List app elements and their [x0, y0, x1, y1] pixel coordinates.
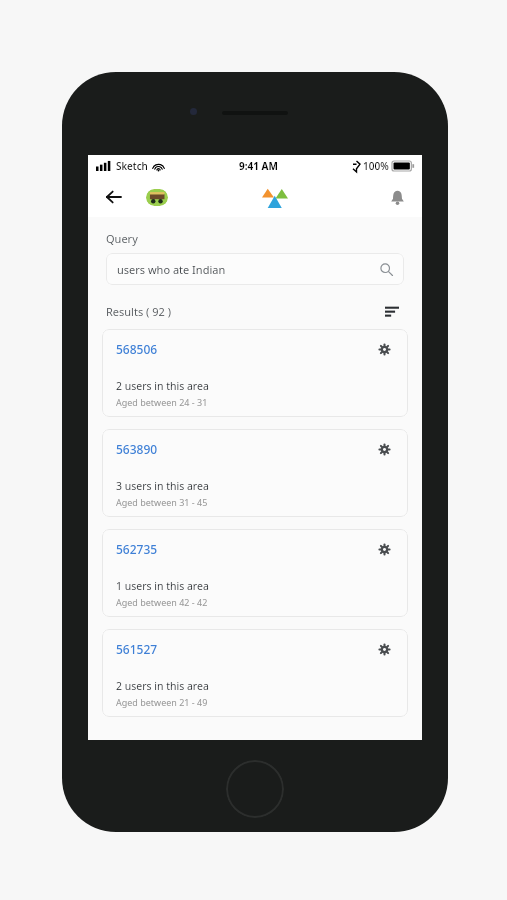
- staticText: 9:41 AM: [239, 159, 278, 173]
- button[interactable]: Back: [98, 182, 128, 212]
- staticText: Aged between 42 - 42: [116, 596, 208, 608]
- staticText: Aged between 31 - 45: [116, 496, 208, 508]
- staticText: Results ( 92 ): [106, 304, 171, 319]
- staticText: 2 users in this area: [116, 679, 209, 693]
- staticText: 1 users in this area: [116, 579, 209, 593]
- button[interactable]: Settings: [374, 339, 394, 359]
- staticText: 568506: [116, 341, 158, 357]
- button[interactable]: Sort: [380, 301, 404, 321]
- button[interactable]: Settings: [374, 639, 394, 659]
- button[interactable]: users who ate Indian: [106, 253, 404, 285]
- button[interactable]: Home: [260, 185, 290, 209]
- staticText: 563890: [116, 441, 158, 457]
- staticText: 562735: [116, 541, 158, 557]
- button[interactable]: Settings: [374, 539, 394, 559]
- button[interactable]: 561527: [102, 629, 408, 717]
- button[interactable]: 563890: [102, 429, 408, 517]
- staticText: Query: [106, 231, 138, 246]
- staticText: 561527: [116, 641, 158, 657]
- staticText: Aged between 24 - 31: [116, 396, 208, 408]
- button[interactable]: 562735: [102, 529, 408, 617]
- staticText: 3 users in this area: [116, 479, 209, 493]
- staticText: users who ate Indian: [117, 262, 226, 277]
- button[interactable]: App logo: [146, 189, 168, 206]
- staticText: Aged between 21 - 49: [116, 696, 208, 708]
- button[interactable]: Settings: [374, 439, 394, 459]
- staticText: Sketch: [116, 159, 148, 173]
- staticText: 100%: [363, 159, 389, 173]
- button[interactable]: 568506: [102, 329, 408, 417]
- button[interactable]: Notifications: [382, 182, 412, 212]
- staticText: 2 users in this area: [116, 379, 209, 393]
